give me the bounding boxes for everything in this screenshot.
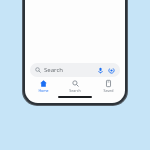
staticText: Search [69, 88, 81, 93]
button[interactable]: Home [28, 79, 58, 94]
staticText: Saved [103, 88, 114, 93]
button[interactable]: Search [60, 79, 90, 94]
button[interactable]: Voice search [96, 66, 105, 75]
staticText: Home [38, 88, 49, 93]
button[interactable]: Saved [93, 79, 123, 94]
button[interactable]: Google Lens [107, 66, 116, 75]
staticText: Search [44, 66, 63, 74]
button[interactable]: Search [30, 63, 120, 77]
